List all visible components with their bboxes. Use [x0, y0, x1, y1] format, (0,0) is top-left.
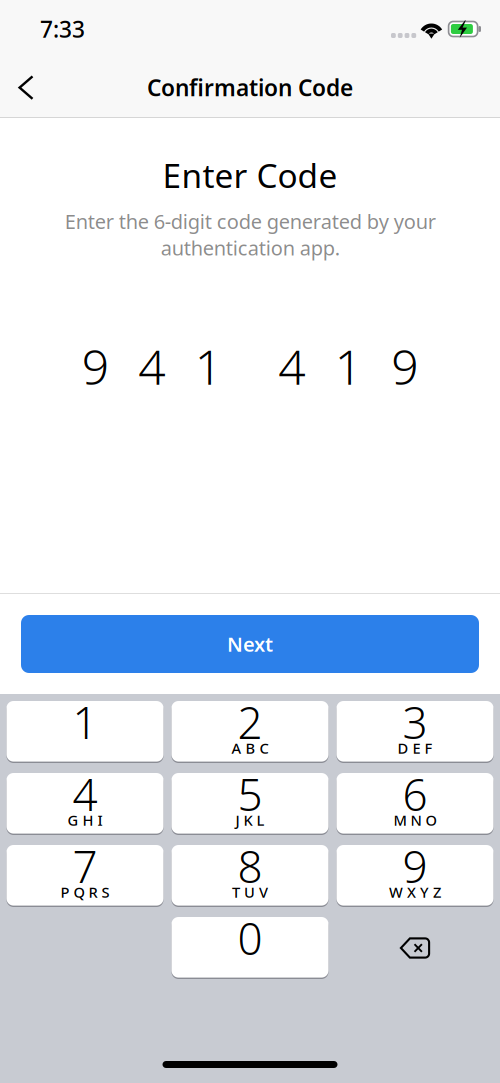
staticText: 7 [72, 837, 97, 895]
staticText: 3 [402, 693, 427, 751]
staticText: P Q R S [60, 882, 109, 902]
button[interactable]: 5 [171, 773, 328, 835]
staticText: 9 [391, 334, 418, 398]
button[interactable]: Next [21, 615, 479, 673]
staticText: 4 [72, 765, 97, 823]
staticText: 4 [278, 334, 305, 398]
staticText: T U V [232, 882, 268, 902]
button[interactable]: 3 [336, 701, 493, 763]
staticText: 1 [72, 693, 97, 751]
button[interactable]: 8 [171, 845, 328, 907]
button[interactable]: Back [0, 62, 52, 112]
staticText: Enter the 6-digit code generated by your… [64, 208, 435, 261]
staticText: 7:33 [40, 14, 85, 44]
staticText: Enter Code [162, 153, 337, 197]
staticText: Confirmation Code [147, 72, 353, 102]
staticText: J K L [235, 810, 264, 830]
staticText: Next [227, 631, 273, 657]
staticText: 8 [237, 837, 262, 895]
button[interactable]: 7 [6, 845, 163, 907]
staticText: 4 [138, 334, 165, 398]
button[interactable]: 1 [6, 701, 163, 763]
button[interactable]: 0 [171, 917, 328, 979]
button[interactable]: 2 [171, 701, 328, 763]
staticText: 9 [82, 334, 109, 398]
staticText: 1 [195, 334, 222, 398]
staticText: 0 [237, 909, 262, 967]
staticText: 2 [237, 693, 262, 751]
staticText: W X Y Z [389, 882, 441, 902]
button[interactable]: 4 [6, 773, 163, 835]
button[interactable]: 6 [336, 773, 493, 835]
staticText: 9 [402, 837, 427, 895]
staticText: A B C [231, 738, 268, 758]
button[interactable]: 9 [336, 845, 493, 907]
staticText: 5 [237, 765, 262, 823]
staticText: D E F [397, 738, 432, 758]
staticText: 6 [402, 765, 427, 823]
staticText: M N O [393, 810, 436, 830]
button[interactable]: Delete [336, 917, 493, 979]
staticText: 1 [335, 334, 362, 398]
staticText: G H I [67, 810, 102, 830]
